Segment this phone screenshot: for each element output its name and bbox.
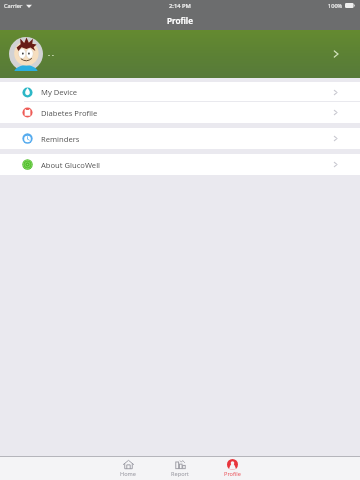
staticText: Report [171,470,189,478]
staticText: Profile [167,15,193,26]
button[interactable]: About GlucoWell [0,154,360,175]
button[interactable]: - - [0,30,360,78]
staticText: 100% [328,2,343,10]
staticText: About GlucoWell [41,160,101,170]
staticText: Reminders [41,134,80,144]
button[interactable]: Profile [206,457,258,480]
staticText: My Device [41,87,78,97]
staticText: Diabetes Profile [41,108,98,118]
button[interactable]: My Device [0,82,360,102]
staticText: Carrier [4,2,23,10]
button[interactable]: Home [102,457,154,480]
staticText: Home [120,470,136,478]
button[interactable]: Reminders [0,128,360,149]
button[interactable]: Report [154,457,206,480]
staticText: Profile [224,470,241,478]
button[interactable]: Diabetes Profile [0,102,360,123]
staticText: - - [48,50,54,59]
staticText: 2:14 PM [169,2,191,10]
